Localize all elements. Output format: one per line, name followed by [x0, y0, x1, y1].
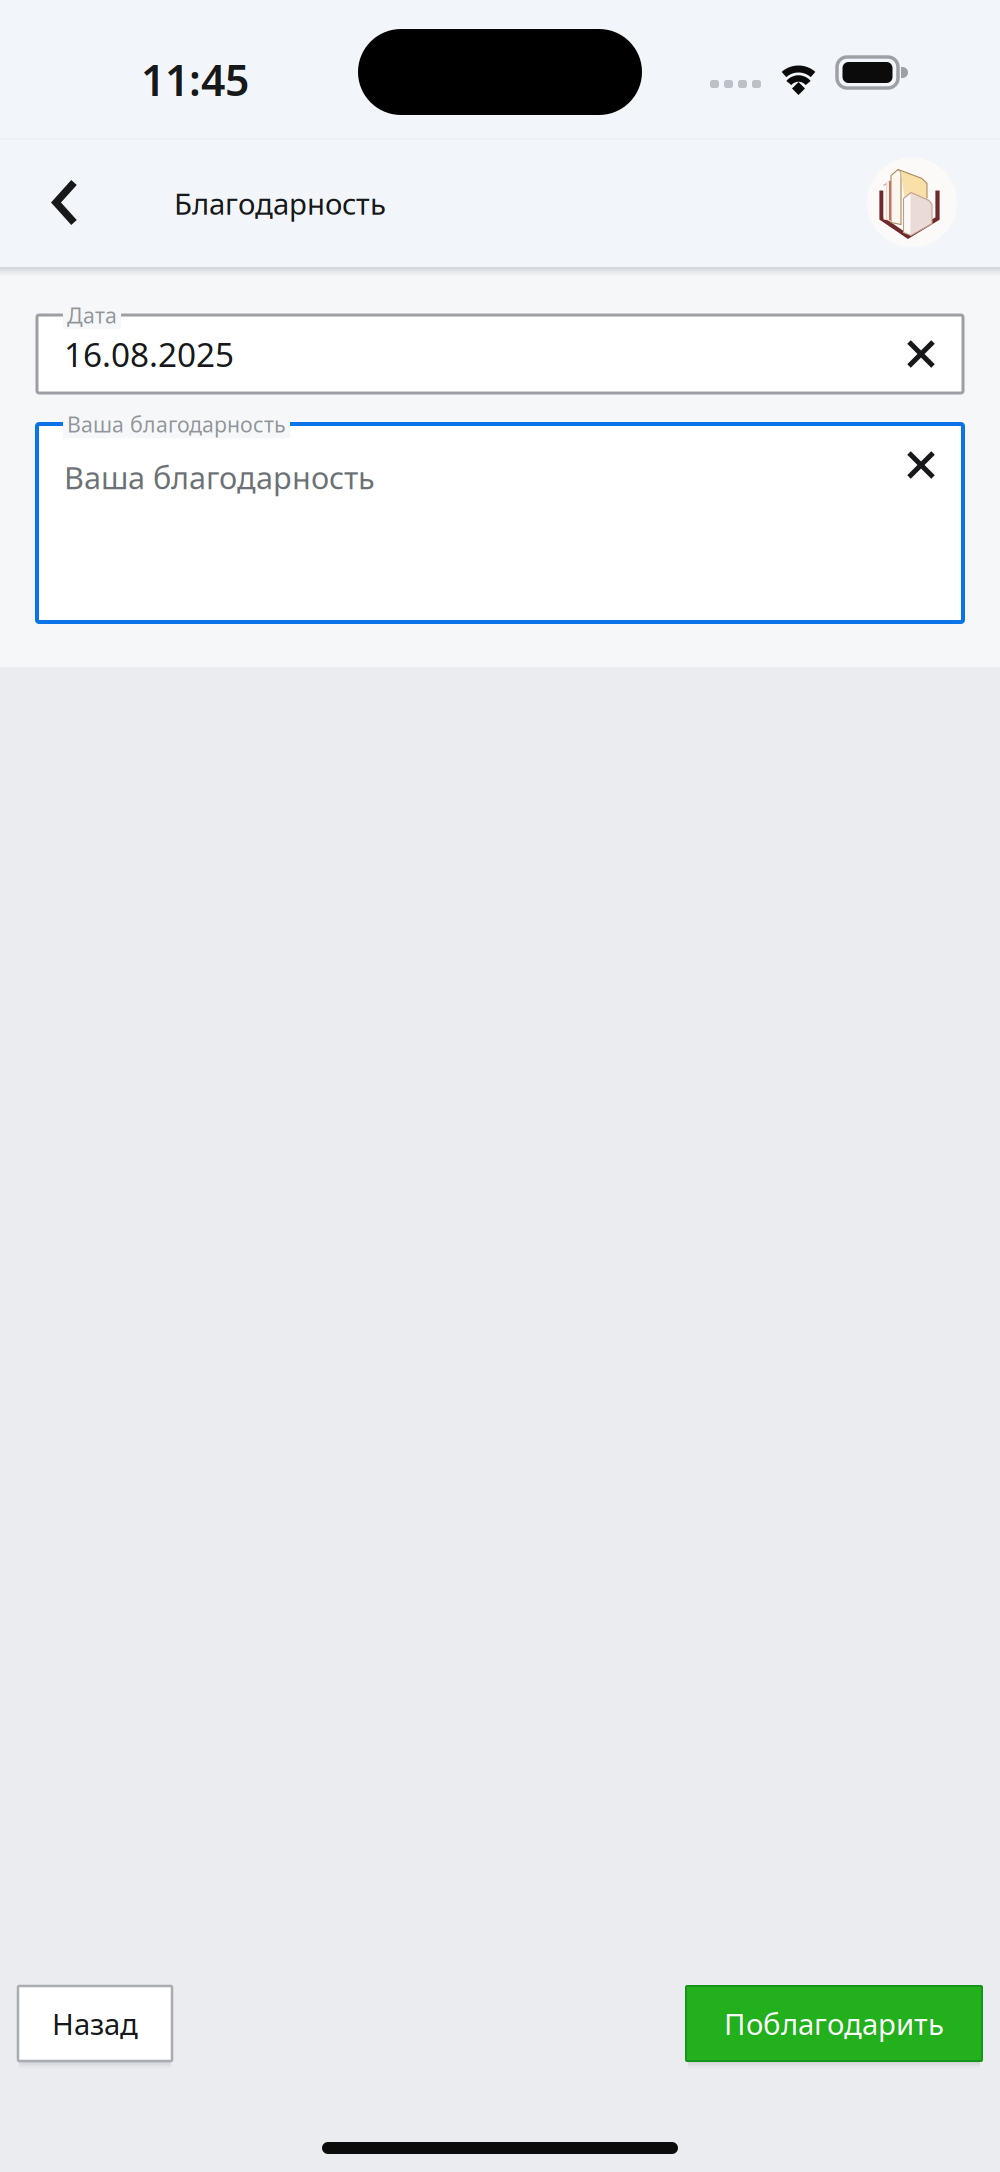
staticText: 11:45 — [141, 51, 249, 108]
button[interactable]: Очистить — [883, 316, 959, 392]
button[interactable]: Назад — [18, 1986, 172, 2061]
staticText: Назад — [52, 2004, 138, 2043]
staticText: 16.08.2025 — [64, 332, 234, 376]
staticText: Ваша благодарность — [64, 457, 375, 498]
staticText: Дата — [67, 301, 117, 329]
button[interactable]: Профиль — [857, 138, 967, 267]
staticText: Ваша благодарность — [67, 410, 286, 438]
button[interactable]: Очистить — [883, 427, 959, 503]
staticText: Поблагодарить — [724, 2004, 944, 2043]
button[interactable]: Назад — [25, 138, 105, 267]
button[interactable]: Поблагодарить — [686, 1986, 982, 2061]
staticText: Благодарность — [174, 184, 386, 223]
